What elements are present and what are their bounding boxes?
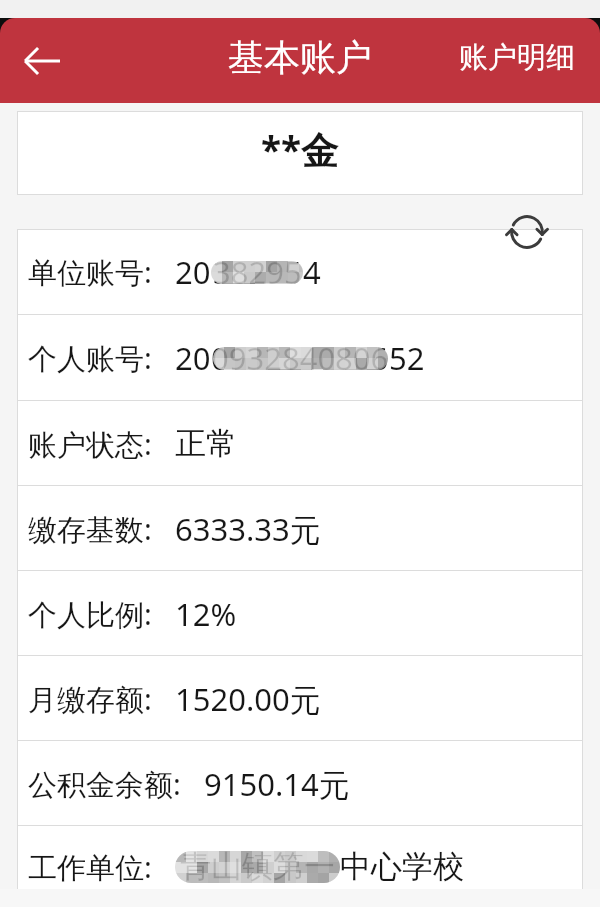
- staticText: 单位账号:: [28, 252, 152, 292]
- staticText: **金: [261, 124, 339, 175]
- staticText: 20: [175, 251, 211, 293]
- button[interactable]: 个人比例:: [17, 571, 583, 656]
- staticText: 月缴存额:: [28, 679, 152, 719]
- staticText: 1520.00元: [175, 678, 321, 720]
- staticText: 基本账户: [228, 35, 372, 80]
- staticText: 20: [175, 337, 211, 379]
- staticText: 个人比例:: [28, 594, 152, 634]
- button[interactable]: 账户状态:: [17, 401, 583, 486]
- staticText: 正常: [175, 424, 237, 463]
- button[interactable]: Back: [8, 27, 76, 95]
- staticText: 青山镇第一: [180, 847, 335, 886]
- staticText: 公积金余额:: [28, 764, 181, 804]
- button[interactable]: Refresh: [502, 207, 552, 257]
- staticText: 账户明细: [459, 39, 575, 76]
- staticText: 6333.33元: [175, 508, 321, 550]
- staticText: 52: [389, 337, 425, 379]
- staticText: 9150.14元: [204, 763, 350, 805]
- button[interactable]: 缴存基数:: [17, 486, 583, 571]
- staticText: 个人账号:: [28, 338, 152, 378]
- staticText: 缴存基数:: [28, 509, 152, 549]
- button[interactable]: 个人账号:: [17, 315, 583, 401]
- button[interactable]: 月缴存额:: [17, 656, 583, 741]
- button[interactable]: 工作单位:: [17, 826, 583, 907]
- staticText: 0932840806: [211, 337, 389, 379]
- button[interactable]: **金: [17, 111, 583, 195]
- button[interactable]: 公积金余额:: [17, 741, 583, 826]
- staticText: 12%: [175, 593, 237, 635]
- button[interactable]: 单位账号:: [17, 229, 583, 315]
- button[interactable]: 账户明细: [453, 29, 581, 86]
- staticText: 中心学校: [340, 847, 464, 886]
- staticText: 38295: [213, 251, 302, 293]
- staticText: 4: [303, 251, 321, 293]
- staticText: 工作单位:: [28, 847, 152, 887]
- staticText: 账户状态:: [28, 424, 152, 464]
